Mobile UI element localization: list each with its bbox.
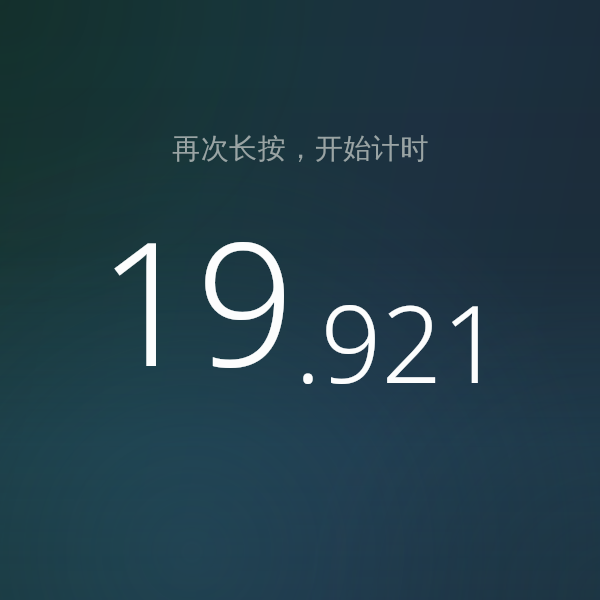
staticText: .921 <box>295 270 503 414</box>
button[interactable]: Long press again to start timing <box>0 0 600 600</box>
staticText: 再次长按，开始计时 <box>172 131 429 166</box>
staticText: 19 <box>98 182 295 416</box>
button[interactable]: 19 <box>98 182 503 416</box>
